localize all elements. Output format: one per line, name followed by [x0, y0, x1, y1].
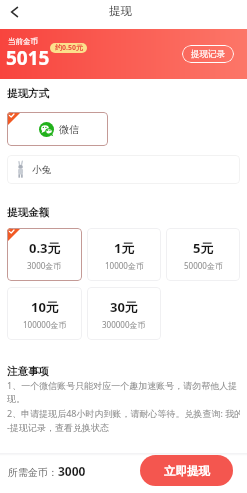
staticText: 提现方式: [7, 87, 49, 100]
staticText: 50000金币: [184, 260, 223, 271]
staticText: 0.3元: [29, 239, 61, 257]
staticText: 2、申请提现后48小时内到账，请耐心等待。兑换查询: 我的-: [7, 407, 240, 421]
button[interactable]: 10元: [7, 287, 82, 340]
button[interactable]: 0.3元: [7, 228, 82, 281]
staticText: 3000: [58, 463, 86, 479]
staticText: 微信: [59, 123, 79, 136]
staticText: 30元: [110, 298, 138, 316]
staticText: 注意事项: [7, 365, 49, 378]
staticText: 1、一个微信账号只能对应一个趣加速账号，请勿帮他人提: [7, 379, 238, 393]
staticText: 小兔: [32, 164, 51, 176]
button[interactable]: 立即提现: [140, 455, 233, 486]
staticText: 立即提现: [164, 464, 210, 478]
button[interactable]: 5元: [166, 228, 240, 281]
button[interactable]: Back: [0, 0, 29, 23]
staticText: -提现记录，查看兑换状态: [7, 421, 109, 435]
staticText: 5元: [193, 239, 214, 257]
staticText: 5015: [6, 45, 50, 71]
button[interactable]: 1元: [87, 228, 161, 281]
staticText: 提现记录: [191, 49, 225, 60]
staticText: 提现: [109, 4, 132, 18]
button[interactable]: 小兔: [7, 155, 240, 184]
button[interactable]: 微信: [7, 112, 108, 146]
staticText: 现。: [7, 393, 25, 407]
staticText: 当前金币: [8, 37, 38, 46]
staticText: 1元: [114, 239, 135, 257]
staticText: 10元: [31, 298, 59, 316]
staticText: 约0.50元: [55, 43, 83, 53]
button[interactable]: 30元: [87, 287, 161, 340]
staticText: 100000金币: [23, 319, 67, 330]
staticText: 提现金额: [7, 206, 49, 219]
button[interactable]: 提现记录: [182, 45, 234, 63]
staticText: 所需金币：: [8, 466, 58, 479]
staticText: 10000金币: [105, 260, 144, 271]
staticText: 300000金币: [102, 319, 146, 330]
staticText: 3000金币: [27, 260, 62, 271]
